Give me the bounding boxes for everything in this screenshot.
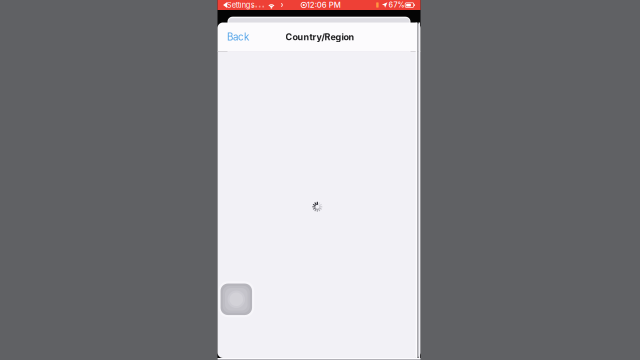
button[interactable]: Back [223, 29, 253, 45]
staticText: 67% [388, 1, 404, 9]
staticText: Country/Region [285, 31, 354, 42]
button[interactable]: AssistiveTouch [218, 281, 254, 317]
staticText: Settings [227, 0, 255, 9]
staticText: 12:06 PM [307, 0, 341, 10]
staticText: Back [227, 31, 249, 43]
